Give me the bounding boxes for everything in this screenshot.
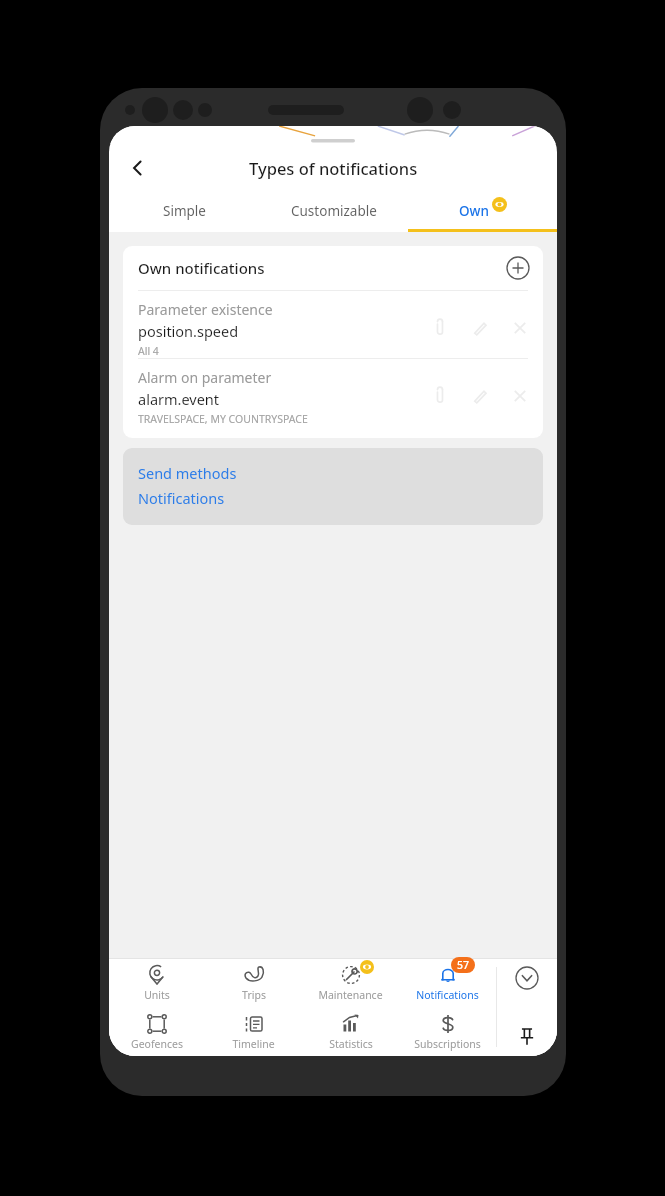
button[interactable]: Add notification: [506, 256, 530, 280]
button[interactable]: Parameter existence: [123, 291, 543, 358]
button[interactable]: Geofences: [109, 1007, 205, 1056]
staticText: Statistics: [329, 1037, 373, 1051]
button[interactable]: Subscriptions: [399, 1007, 496, 1056]
staticText: 57: [457, 958, 470, 972]
button[interactable]: Collapse: [497, 958, 557, 1007]
staticText: Own notifications: [138, 258, 506, 278]
button[interactable]: Attach: [430, 318, 450, 338]
staticText: Units: [144, 988, 170, 1002]
button[interactable]: Notifications: [138, 488, 225, 508]
staticText: position.speed: [138, 321, 239, 341]
staticText: Types of notifications: [249, 157, 418, 179]
button[interactable]: Pin: [497, 1007, 557, 1056]
button[interactable]: Delete: [510, 386, 530, 406]
button[interactable]: Edit: [470, 386, 490, 406]
button[interactable]: 57: [399, 958, 496, 1007]
button[interactable]: Alarm on parameter: [123, 359, 543, 426]
button[interactable]: Timeline: [205, 1007, 302, 1056]
staticText: TRAVELSPACE, MY COUNTRYSPACE: [138, 412, 308, 426]
button[interactable]: Customizable: [259, 192, 408, 229]
staticText: Notifications: [416, 988, 479, 1002]
staticText: Notifications: [138, 488, 225, 508]
staticText: Customizable: [291, 202, 377, 220]
button[interactable]: Own: [408, 192, 557, 229]
staticText: Geofences: [131, 1037, 183, 1051]
staticText: Own: [459, 202, 489, 220]
staticText: Trips: [242, 988, 266, 1002]
staticText: Timeline: [232, 1037, 275, 1051]
button[interactable]: Edit: [470, 318, 490, 338]
staticText: alarm.event: [138, 389, 220, 409]
button[interactable]: Units: [109, 958, 205, 1007]
staticText: Subscriptions: [414, 1037, 481, 1051]
button[interactable]: Delete: [510, 318, 530, 338]
button[interactable]: Maintenance: [302, 958, 399, 1007]
button[interactable]: Attach: [430, 386, 450, 406]
button[interactable]: Send methods: [138, 463, 237, 483]
button[interactable]: Trips: [205, 958, 302, 1007]
staticText: Send methods: [138, 463, 237, 483]
button[interactable]: Back: [117, 148, 157, 188]
staticText: Alarm on parameter: [138, 368, 272, 387]
button[interactable]: Statistics: [302, 1007, 399, 1056]
staticText: Simple: [163, 202, 206, 220]
staticText: All 4: [138, 344, 159, 358]
staticText: Maintenance: [318, 988, 383, 1002]
staticText: Parameter existence: [138, 300, 273, 319]
button[interactable]: Simple: [109, 192, 259, 229]
